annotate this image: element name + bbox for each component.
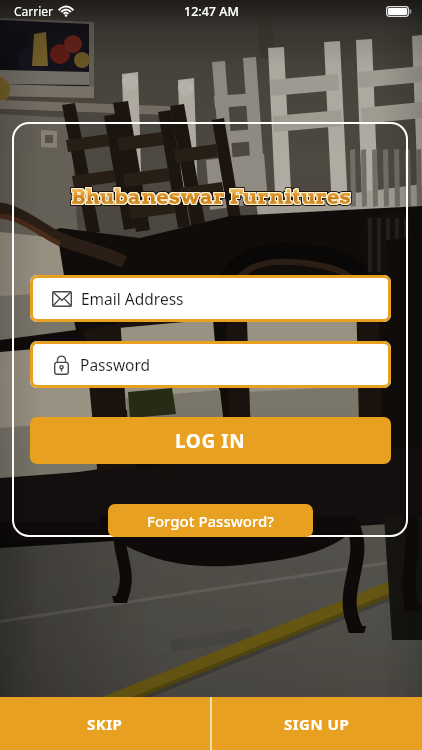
staticText: Bhubaneswar Furnitures: [71, 186, 351, 211]
button[interactable]: SKIP: [0, 697, 210, 750]
staticText: LOG IN: [175, 428, 246, 454]
staticText: Bhubaneswar Furnitures: [71, 183, 351, 208]
staticText: Bhubaneswar Furnitures: [70, 185, 350, 210]
staticText: Bhubaneswar Furnitures: [69, 182, 349, 207]
staticText: Bhubaneswar Furnitures: [72, 185, 352, 210]
button[interactable]: Email Address: [30, 275, 391, 322]
staticText: Forgot Password?: [147, 511, 275, 531]
staticText: Bhubaneswar Furnitures: [71, 185, 351, 210]
staticText: 12:47 AM: [184, 3, 239, 20]
staticText: Bhubaneswar Furnitures: [69, 186, 349, 211]
button[interactable]: LOG IN: [30, 417, 391, 464]
button[interactable]: Forgot Password?: [108, 504, 313, 537]
button[interactable]: Password: [30, 341, 391, 388]
staticText: SKIP: [87, 714, 123, 734]
staticText: Bhubaneswar Furnitures: [69, 184, 349, 209]
staticText: Password: [80, 354, 151, 375]
staticText: SIGN UP: [284, 714, 350, 734]
staticText: Bhubaneswar Furnitures: [72, 183, 352, 208]
staticText: Bhubaneswar Furnitures: [73, 184, 353, 209]
staticText: Bhubaneswar Furnitures: [72, 184, 352, 209]
staticText: Bhubaneswar Furnitures: [70, 183, 350, 208]
staticText: Bhubaneswar Furnitures: [73, 182, 353, 207]
staticText: Bhubaneswar Furnitures: [71, 182, 351, 207]
button[interactable]: SIGN UP: [212, 697, 422, 750]
staticText: Email Address: [81, 288, 184, 309]
staticText: Bhubaneswar Furnitures: [71, 184, 351, 209]
staticText: Bhubaneswar Furnitures: [73, 186, 353, 211]
staticText: Bhubaneswar Furnitures: [70, 184, 350, 209]
staticText: Carrier: [14, 3, 54, 19]
